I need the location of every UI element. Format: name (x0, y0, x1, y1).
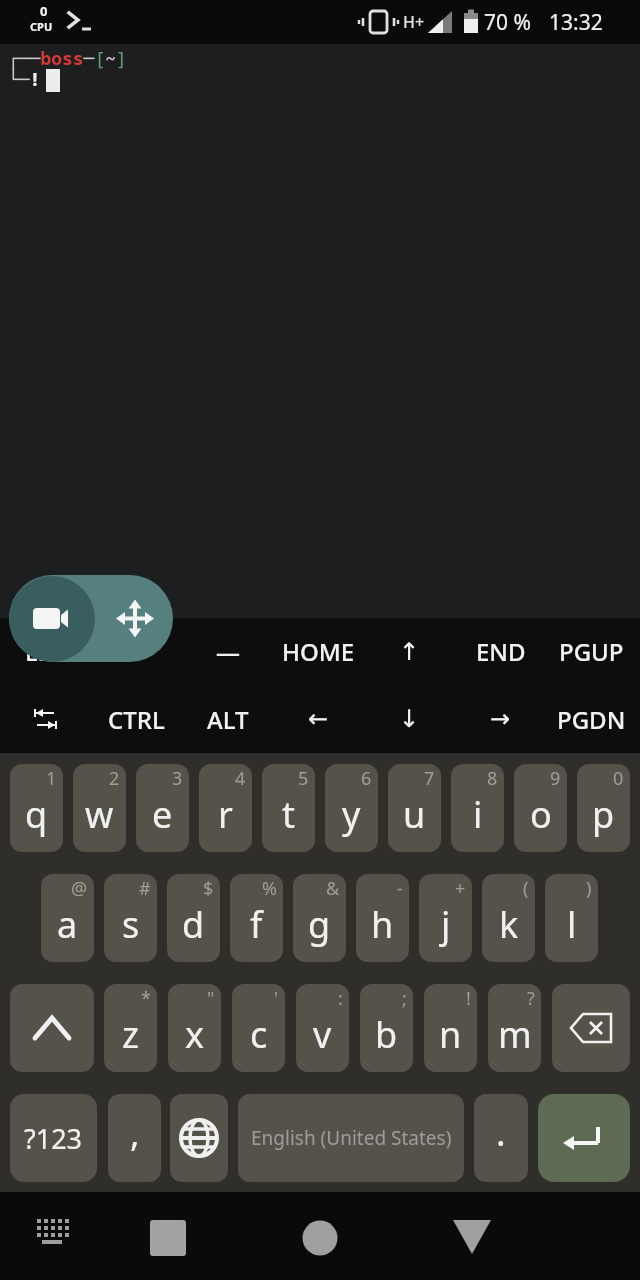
button[interactable]: ― (182, 618, 273, 685)
button[interactable]: . (474, 1094, 528, 1182)
staticText: l (567, 900, 577, 949)
button[interactable]: n (424, 984, 477, 1072)
button[interactable]: CTRL (91, 685, 182, 753)
button[interactable]: / (91, 618, 182, 685)
button[interactable]: a (41, 874, 94, 962)
staticText: o (530, 790, 552, 839)
button[interactable] (9, 576, 95, 662)
button[interactable]: END (455, 618, 546, 685)
button[interactable]: x (168, 984, 221, 1072)
button[interactable]: b (360, 984, 413, 1072)
staticText: 0 (40, 2, 48, 20)
staticText: ' (274, 986, 279, 1011)
staticText: 6 (361, 766, 372, 791)
button[interactable]: m (488, 984, 541, 1072)
button[interactable] (10, 984, 94, 1072)
staticText: f (250, 900, 263, 949)
staticText: CPU (30, 19, 53, 34)
staticText: z (122, 1010, 139, 1059)
button[interactable]: ESC (0, 618, 91, 685)
staticText: " (207, 986, 215, 1011)
staticText: ! (466, 986, 471, 1011)
button[interactable]: w (73, 764, 126, 852)
staticText: % (262, 876, 277, 901)
button[interactable]: ALT (182, 685, 273, 753)
button[interactable]: j (419, 874, 472, 962)
staticText: H+ (403, 11, 425, 33)
staticText: u (403, 790, 426, 839)
button[interactable]: s (104, 874, 157, 962)
button[interactable]: y (325, 764, 378, 852)
staticText: ↓ (399, 705, 420, 733)
button[interactable]: ↓ (364, 685, 455, 753)
button[interactable]: HOME (273, 618, 364, 685)
button[interactable] (538, 1094, 630, 1182)
staticText: ESC (25, 635, 67, 668)
staticText: 9 (550, 766, 561, 791)
button[interactable]: t (262, 764, 315, 852)
button[interactable]: ← (273, 685, 364, 753)
button[interactable] (292, 1210, 348, 1266)
button[interactable]: l (545, 874, 598, 962)
staticText: n (439, 1010, 462, 1059)
staticText: ┌──boss─[~] (8, 46, 127, 71)
staticText: 4 (235, 766, 246, 791)
staticText: CTRL (108, 703, 165, 736)
button[interactable]: ?123 (10, 1094, 97, 1182)
button[interactable] (552, 984, 630, 1072)
staticText: ALT (207, 703, 249, 736)
button[interactable]: q (10, 764, 63, 852)
staticText: b (375, 1010, 398, 1059)
button[interactable] (28, 1218, 78, 1262)
staticText: ; (402, 986, 407, 1011)
staticText: d (182, 900, 205, 949)
button[interactable]: k (482, 874, 535, 962)
staticText: 70 % (484, 8, 531, 37)
button[interactable]: c (232, 984, 285, 1072)
staticText: ) (586, 876, 592, 901)
button[interactable] (140, 1210, 196, 1266)
staticText: ? (527, 986, 535, 1011)
button[interactable]: English (United States) (238, 1094, 464, 1182)
button[interactable]: i (451, 764, 504, 852)
button[interactable]: v (296, 984, 349, 1072)
staticText: v (313, 1010, 332, 1059)
button[interactable]: r (199, 764, 252, 852)
staticText: ― (216, 635, 240, 668)
button[interactable]: d (167, 874, 220, 962)
staticText: : (338, 986, 343, 1011)
staticText: , (130, 1108, 140, 1157)
staticText: ↑ (399, 638, 420, 666)
button[interactable]: e (136, 764, 189, 852)
staticText: + (455, 876, 466, 901)
button[interactable]: → (455, 685, 546, 753)
button[interactable]: o (514, 764, 567, 852)
staticText: k (499, 900, 519, 949)
staticText: 13:32 (549, 8, 603, 37)
staticText: e (152, 790, 173, 839)
button[interactable]: PGDN (546, 685, 637, 753)
staticText: s (122, 900, 140, 949)
staticText: HOME (282, 635, 355, 668)
staticText: @ (71, 876, 88, 901)
staticText: m (498, 1010, 532, 1059)
button[interactable]: g (293, 874, 346, 962)
button[interactable]: z (104, 984, 157, 1072)
button[interactable]: ↑ (364, 618, 455, 685)
button[interactable]: f (230, 874, 283, 962)
button[interactable]: u (388, 764, 441, 852)
staticText: ← (308, 705, 329, 733)
button[interactable] (444, 1210, 500, 1266)
button[interactable]: p (577, 764, 630, 852)
staticText: PGDN (557, 703, 626, 736)
button[interactable] (170, 1094, 228, 1182)
staticText: / (132, 635, 142, 668)
staticText: 1 (46, 766, 57, 791)
button[interactable]: , (108, 1094, 161, 1182)
button[interactable] (9, 575, 173, 662)
button[interactable]: PGUP (546, 618, 637, 685)
staticText: * (141, 986, 151, 1011)
button[interactable]: h (356, 874, 409, 962)
button[interactable] (0, 685, 91, 753)
staticText: y (342, 790, 361, 839)
